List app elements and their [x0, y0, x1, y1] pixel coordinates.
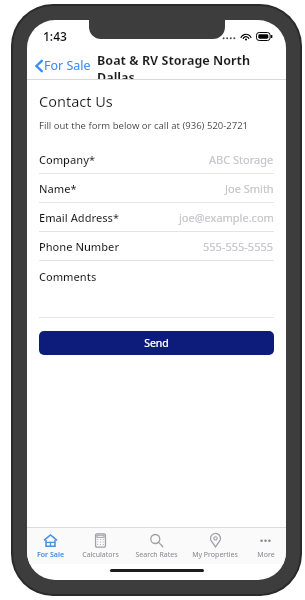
staticText: Phone Number	[39, 239, 120, 254]
button[interactable]: Calculators	[74, 528, 127, 564]
staticText: Comments	[39, 269, 97, 284]
staticText: More	[257, 550, 275, 560]
button[interactable]: For Sale	[27, 528, 74, 564]
staticText: 555-555-5555	[203, 239, 274, 254]
staticText: My Properties	[192, 550, 238, 560]
staticText: Fill out the form below or call at (936)…	[39, 119, 249, 132]
button[interactable]: Phone Number	[39, 232, 274, 260]
button[interactable]: Email Address*	[39, 203, 274, 231]
button[interactable]: Company*	[39, 145, 274, 173]
button[interactable]: My Properties	[185, 528, 245, 564]
button[interactable]: Comments	[39, 261, 274, 317]
staticText: Company*	[39, 152, 95, 167]
staticText: joe@example.com	[179, 210, 274, 225]
button[interactable]: Search Rates	[127, 528, 185, 564]
staticText: Send	[144, 336, 169, 350]
staticText: Boat & RV Storage North Dallas	[97, 52, 286, 79]
staticText: ABC Storage	[209, 152, 274, 167]
button[interactable]: More	[245, 528, 286, 564]
button[interactable]: For Sale	[33, 55, 93, 76]
staticText: For Sale	[37, 550, 64, 560]
staticText: Name*	[39, 181, 77, 196]
staticText: Calculators	[82, 550, 119, 560]
staticText: Search Rates	[135, 550, 178, 560]
staticText: 1:43	[43, 28, 67, 44]
staticText: For Sale	[44, 57, 91, 74]
staticText: Email Address*	[39, 210, 119, 225]
button[interactable]: Name*	[39, 174, 274, 202]
button[interactable]: Send	[39, 331, 274, 355]
staticText: Joe Smith	[225, 181, 274, 196]
staticText: Contact Us	[39, 91, 113, 111]
